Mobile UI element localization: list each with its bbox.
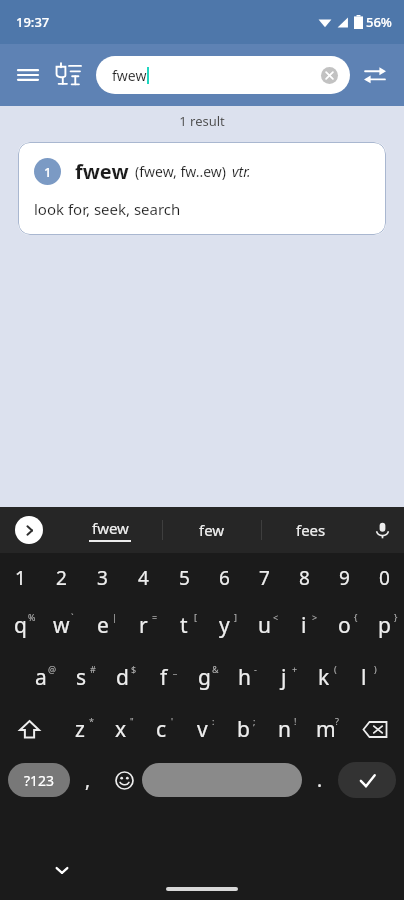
staticText: - <box>254 663 257 675</box>
staticText: . <box>317 767 323 793</box>
staticText: v <box>197 715 208 744</box>
staticText: r <box>139 611 148 640</box>
button[interactable]: t <box>164 599 204 651</box>
staticText: ?123 <box>24 771 55 790</box>
button[interactable]: 8 <box>284 557 324 599</box>
staticText: 7 <box>259 565 270 591</box>
button[interactable]: a <box>20 651 61 703</box>
button[interactable]: 4 <box>123 557 164 599</box>
button[interactable]: Hide keyboard <box>46 854 78 886</box>
button[interactable]: Voice input <box>360 507 404 553</box>
staticText: n <box>278 715 291 744</box>
staticText: l <box>361 663 367 692</box>
button[interactable]: k <box>304 651 344 703</box>
button[interactable]: w <box>41 599 82 651</box>
button[interactable]: Expand suggestions <box>0 507 58 553</box>
staticText: ] <box>234 611 237 623</box>
staticText: < <box>273 611 279 623</box>
staticText: @ <box>48 663 57 675</box>
staticText: | <box>112 611 117 623</box>
button[interactable]: Clear <box>316 62 342 88</box>
button[interactable]: fwew <box>58 507 162 553</box>
button[interactable]: s <box>61 651 102 703</box>
button[interactable]: 6 <box>204 557 244 599</box>
staticText: h <box>238 663 251 692</box>
staticText: fwew <box>75 158 129 185</box>
staticText: { <box>354 611 358 623</box>
button[interactable]: ?123 <box>8 763 70 797</box>
button[interactable]: d <box>102 651 143 703</box>
staticText: ! <box>294 715 297 727</box>
button[interactable]: 7 <box>244 557 284 599</box>
button[interactable]: Emoji <box>106 755 142 805</box>
button[interactable]: e <box>82 599 123 651</box>
staticText: m <box>316 715 336 744</box>
staticText: x <box>115 715 127 744</box>
button[interactable]: m <box>305 703 346 755</box>
button[interactable]: Space <box>142 763 302 797</box>
staticText: 1 <box>15 565 26 591</box>
staticText: g <box>198 663 211 692</box>
button[interactable]: u <box>244 599 284 651</box>
button[interactable]: j <box>264 651 304 703</box>
button[interactable]: 0 <box>364 557 404 599</box>
staticText: = <box>152 611 158 623</box>
button[interactable]: Enter <box>338 762 396 798</box>
staticText: 19:37 <box>16 13 50 31</box>
button[interactable]: 3 <box>82 557 123 599</box>
button[interactable]: p <box>364 599 404 651</box>
staticText: p <box>378 611 391 640</box>
button[interactable]: 2 <box>41 557 82 599</box>
button[interactable]: v <box>182 703 223 755</box>
button[interactable]: q <box>0 599 41 651</box>
button[interactable]: o <box>324 599 364 651</box>
staticText: 8 <box>299 565 310 591</box>
staticText: s <box>76 663 87 692</box>
button[interactable]: l <box>344 651 384 703</box>
button[interactable]: y <box>204 599 244 651</box>
staticText: y <box>219 611 230 640</box>
button[interactable]: z <box>59 703 100 755</box>
button[interactable]: c <box>141 703 182 755</box>
button[interactable]: n <box>264 703 305 755</box>
button[interactable]: fees <box>262 507 360 553</box>
staticText: + <box>292 663 298 675</box>
button[interactable]: g <box>184 651 224 703</box>
button[interactable]: fwew <box>96 56 350 94</box>
button[interactable]: 1 <box>18 142 386 235</box>
button[interactable]: Language <box>48 55 88 95</box>
button[interactable]: . <box>302 755 338 805</box>
button[interactable]: , <box>70 755 106 805</box>
button[interactable]: 1 <box>0 557 41 599</box>
staticText: b <box>237 715 250 744</box>
button[interactable]: r <box>123 599 164 651</box>
button[interactable]: Menu <box>10 57 46 93</box>
staticText: _ <box>173 663 177 675</box>
button[interactable]: 9 <box>324 557 364 599</box>
staticText: ) <box>374 663 377 675</box>
staticText: q <box>14 611 27 640</box>
button[interactable]: Shift <box>0 703 59 755</box>
button[interactable]: 5 <box>164 557 204 599</box>
button[interactable]: Swap languages <box>356 56 394 94</box>
staticText: 5 <box>179 565 190 591</box>
button[interactable]: Backspace <box>346 703 404 755</box>
staticText: fees <box>296 520 326 540</box>
button[interactable]: i <box>284 599 324 651</box>
staticText: " <box>130 715 134 727</box>
button[interactable]: f <box>143 651 184 703</box>
staticText: 0 <box>379 565 390 591</box>
staticText: [ <box>194 611 197 623</box>
staticText: 1 <box>44 163 52 181</box>
staticText: % <box>28 611 36 623</box>
button[interactable]: x <box>100 703 141 755</box>
button[interactable]: h <box>224 651 264 703</box>
button[interactable]: b <box>223 703 264 755</box>
staticText: k <box>318 663 330 692</box>
staticText: few <box>199 520 225 540</box>
staticText: ; <box>253 715 256 727</box>
staticText: & <box>212 663 219 675</box>
button[interactable]: few <box>163 507 261 553</box>
staticText: look for, seek, search <box>34 199 181 219</box>
staticText: } <box>394 611 398 623</box>
